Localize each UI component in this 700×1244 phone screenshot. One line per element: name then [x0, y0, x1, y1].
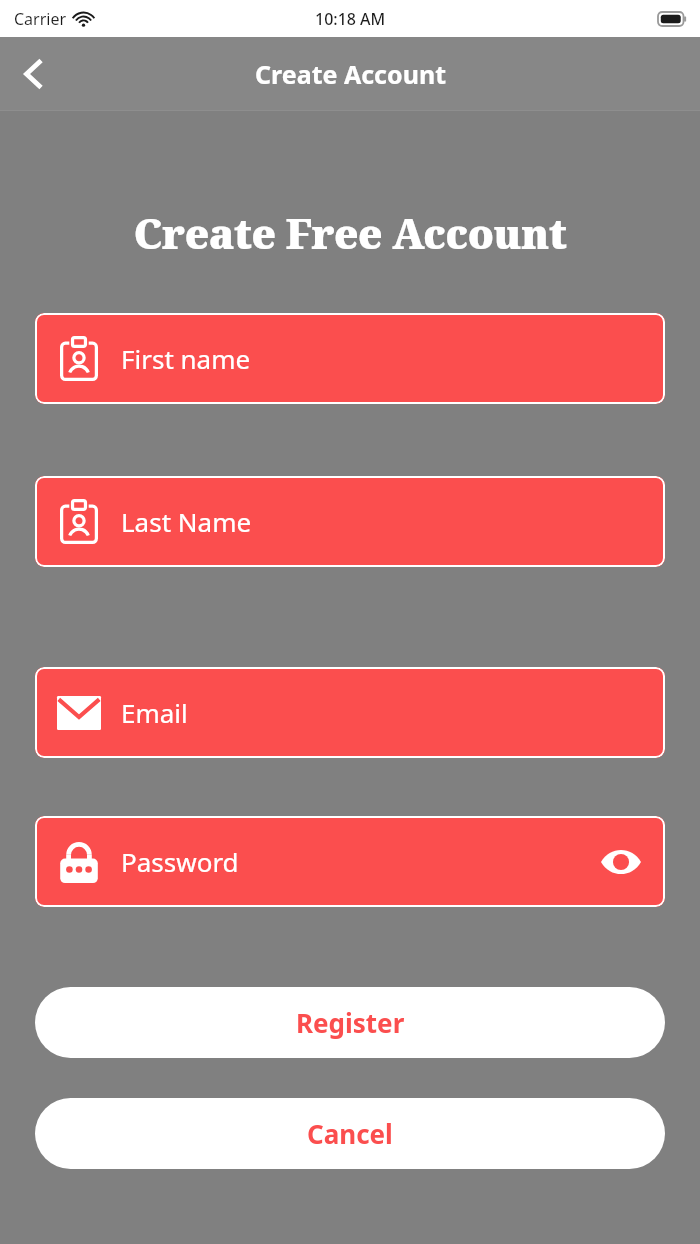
staticText: Cancel [307, 1116, 393, 1151]
staticText: Last Name [121, 504, 252, 539]
staticText: Email [121, 695, 188, 730]
button[interactable]: Last Name [35, 476, 665, 567]
staticText: Create Account [255, 57, 446, 91]
staticText: 10:18 AM [315, 8, 386, 30]
button[interactable]: Register [35, 987, 665, 1058]
staticText: First name [121, 341, 251, 376]
staticText: Password [121, 844, 239, 879]
button[interactable]: Show password [599, 840, 643, 884]
staticText: Create Free Account [0, 205, 700, 261]
button[interactable]: Email [35, 667, 665, 758]
staticText: Carrier [14, 8, 67, 30]
button[interactable]: Back [8, 48, 60, 100]
button[interactable]: Password [35, 816, 665, 907]
button[interactable]: First name [35, 313, 665, 404]
staticText: Register [296, 1005, 405, 1040]
button[interactable]: Cancel [35, 1098, 665, 1169]
